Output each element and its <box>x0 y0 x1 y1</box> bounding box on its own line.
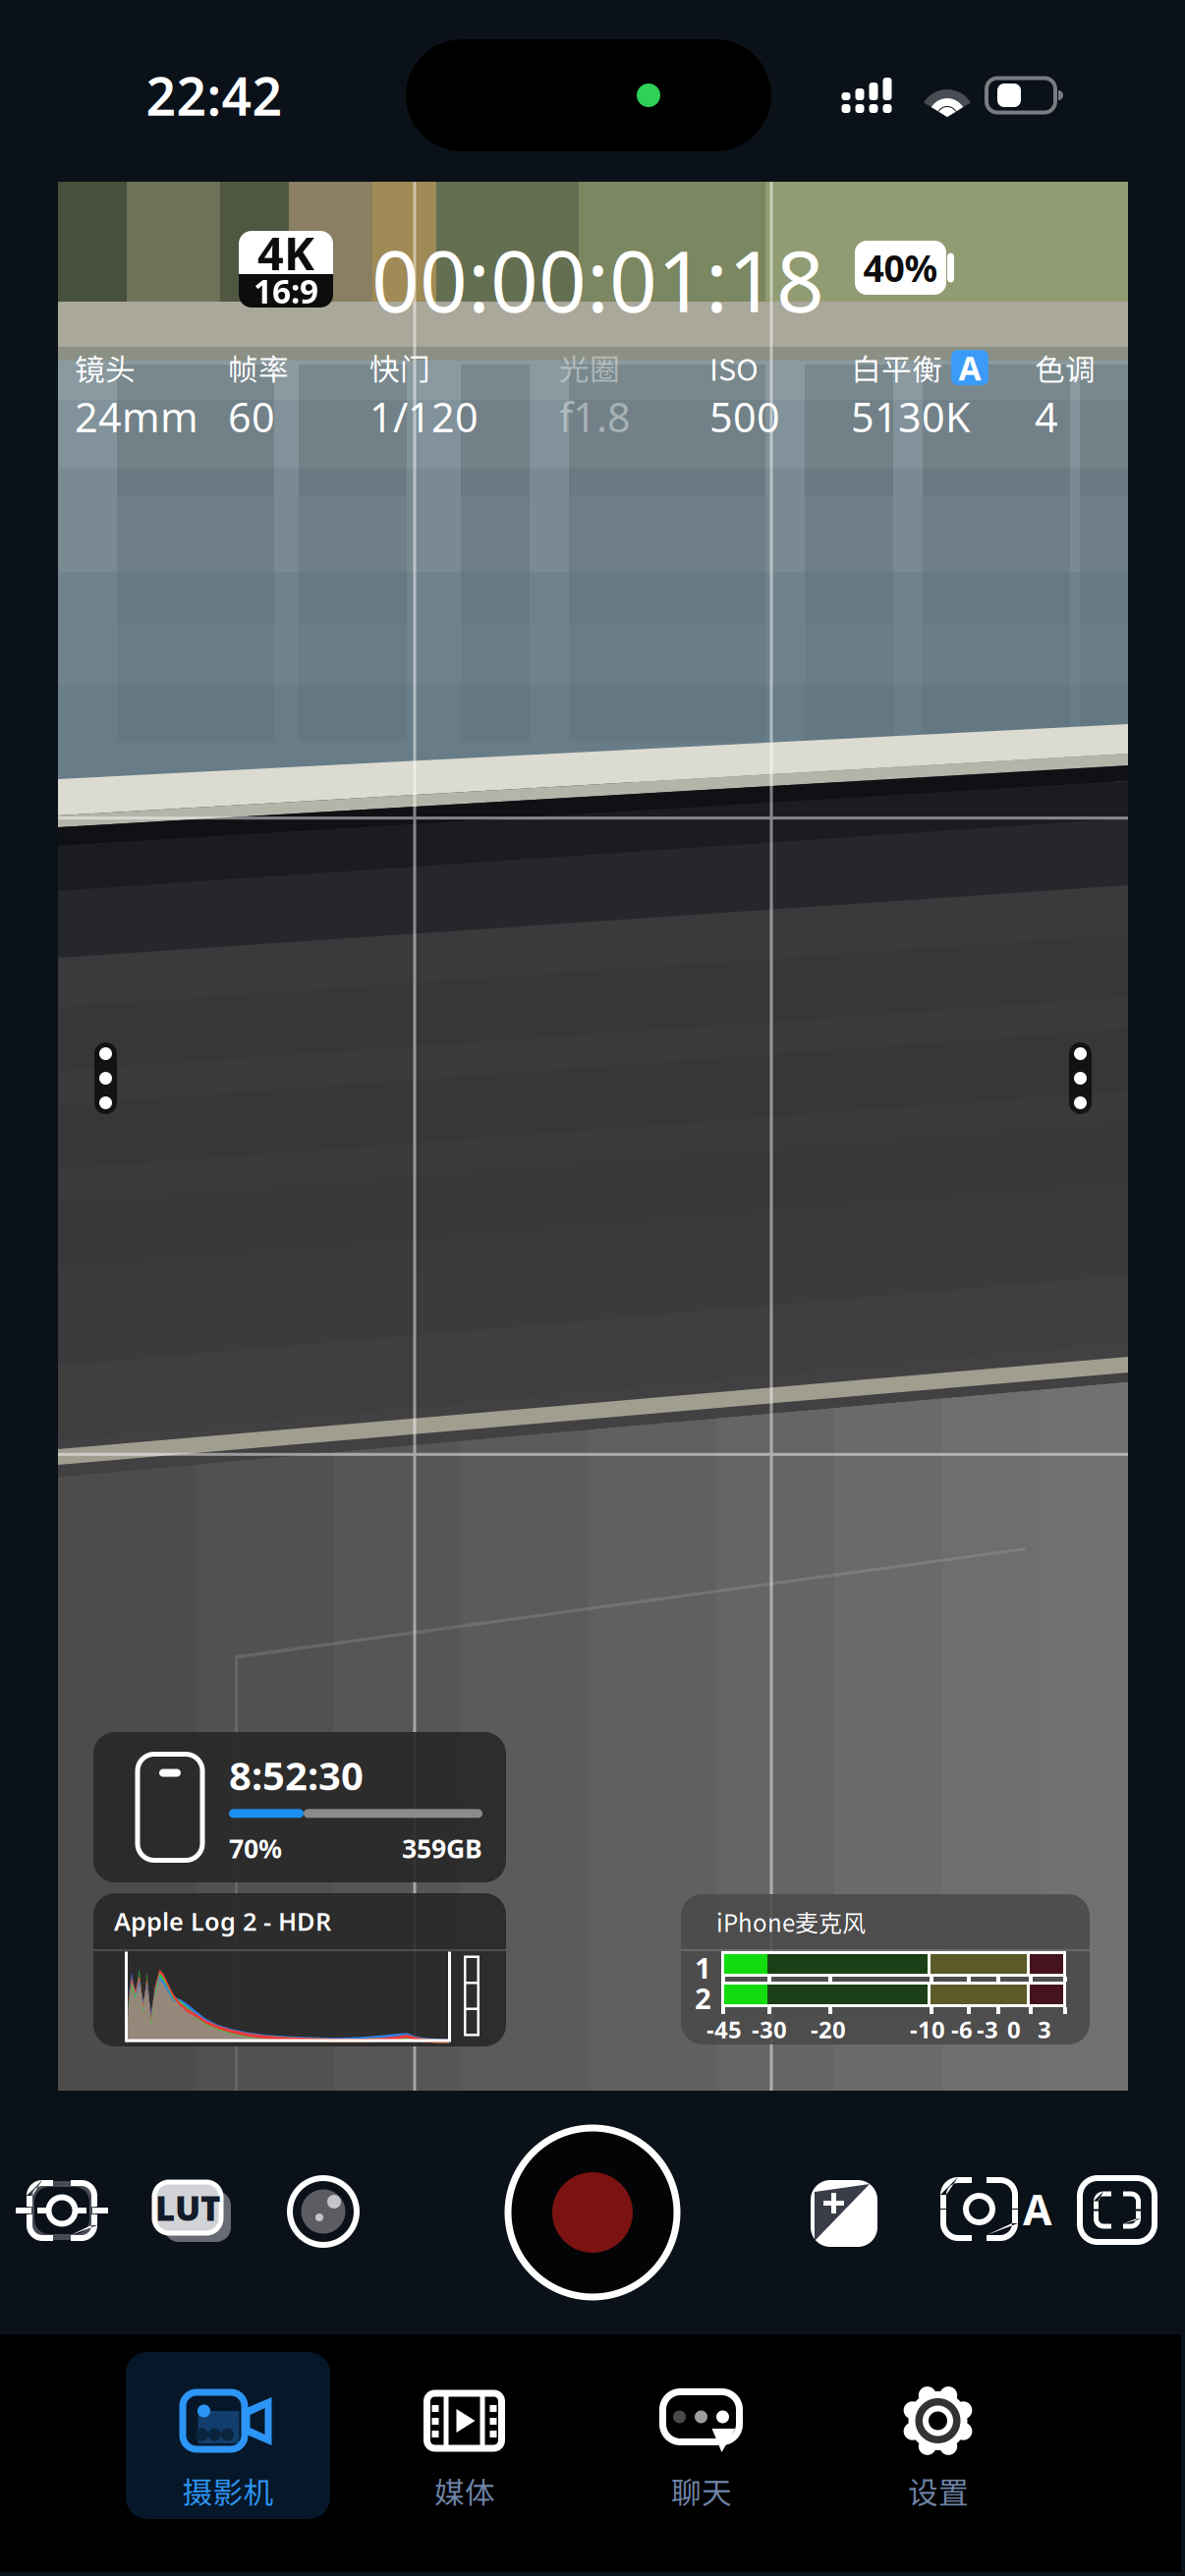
staticText: 00:00:01:18 <box>371 224 824 335</box>
staticText: 500 <box>709 389 780 443</box>
staticText: 媒体 <box>434 2469 495 2513</box>
staticText: -30 <box>752 2014 787 2045</box>
staticText: 5130K <box>851 389 971 443</box>
staticText: -20 <box>811 2014 846 2045</box>
staticText: f1.8 <box>559 389 631 443</box>
staticText: ISO <box>709 346 759 389</box>
staticText: 光圈 <box>559 346 620 389</box>
button[interactable]: White balance <box>941 2177 1051 2241</box>
staticText: 0 <box>1007 2014 1021 2045</box>
staticText: LUT <box>155 2185 220 2230</box>
staticText: -3 <box>977 2014 998 2045</box>
staticText: 帧率 <box>228 346 289 389</box>
staticText: 4 <box>1035 389 1058 443</box>
button[interactable]: Exposure <box>811 2180 877 2247</box>
staticText: 快门 <box>369 346 430 389</box>
staticText: 摄影机 <box>182 2469 274 2513</box>
staticText: A <box>1023 2181 1052 2237</box>
button[interactable]: 聊天 <box>599 2352 804 2519</box>
staticText: 24mm <box>75 389 198 443</box>
staticText: 白平衡 <box>851 346 942 389</box>
staticText: -45 <box>706 2014 742 2045</box>
staticText: iPhone麦克风 <box>716 1905 866 1939</box>
staticText: 40% <box>863 243 938 292</box>
staticText: 8:52:30 <box>229 1749 364 1801</box>
button[interactable]: LUT <box>151 2177 234 2246</box>
staticText: 色调 <box>1035 346 1096 389</box>
staticText: 3 <box>1038 2014 1051 2045</box>
staticText: A <box>959 346 981 389</box>
staticText: 1/120 <box>369 389 479 443</box>
staticText: 镜头 <box>75 346 136 389</box>
button[interactable]: 媒体 <box>363 2352 567 2519</box>
staticText: 4K <box>257 222 314 283</box>
staticText: -10 <box>910 2014 945 2045</box>
staticText: 设置 <box>908 2469 969 2513</box>
staticText: 16:9 <box>254 269 318 313</box>
staticText: 70% <box>229 1831 282 1865</box>
staticText: 聊天 <box>671 2469 732 2513</box>
staticText: 1 <box>695 1948 711 1987</box>
staticText: 359GB <box>402 1831 482 1865</box>
button[interactable]: 摄影机 <box>126 2352 330 2519</box>
staticText: -6 <box>951 2014 973 2045</box>
staticText: Apple Log 2 - HDR <box>114 1905 331 1938</box>
button[interactable]: Lens <box>287 2175 360 2248</box>
button[interactable]: 设置 <box>836 2352 1041 2519</box>
staticText: 22:42 <box>146 61 282 130</box>
staticText: 2 <box>695 1979 711 2017</box>
button[interactable]: Focus <box>16 2174 108 2247</box>
button[interactable]: Framing <box>1080 2178 1155 2242</box>
staticText: 60 <box>228 389 275 443</box>
button[interactable]: Record <box>504 2124 681 2301</box>
